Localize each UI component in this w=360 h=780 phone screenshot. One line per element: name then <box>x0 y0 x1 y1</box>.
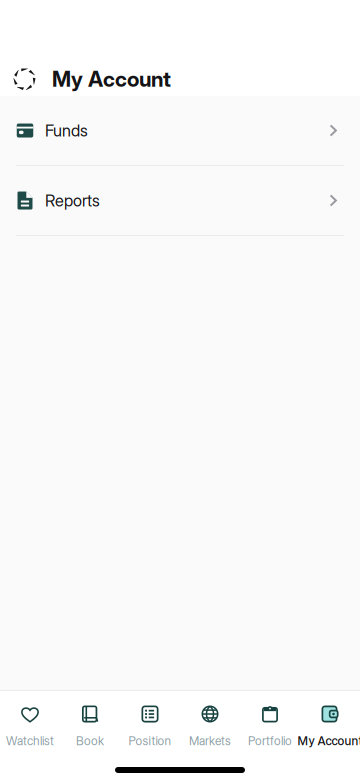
staticText: My Account <box>297 733 360 748</box>
staticText: Funds <box>45 121 88 140</box>
button[interactable]: Funds <box>0 96 360 166</box>
staticText: Portfolio <box>248 733 292 748</box>
staticText: Watchlist <box>6 733 54 748</box>
staticText: Markets <box>189 733 231 748</box>
button[interactable]: Book <box>60 689 120 749</box>
button[interactable]: Watchlist <box>0 689 60 749</box>
staticText: Reports <box>45 191 100 210</box>
button[interactable]: Markets <box>180 689 240 749</box>
staticText: My Account <box>52 66 171 92</box>
button[interactable]: Position <box>120 689 180 749</box>
button[interactable]: My Account <box>300 689 360 749</box>
staticText: Book <box>76 733 104 748</box>
staticText: Position <box>128 733 171 748</box>
button[interactable]: Reports <box>0 166 360 236</box>
button[interactable]: Portfolio <box>240 689 300 749</box>
